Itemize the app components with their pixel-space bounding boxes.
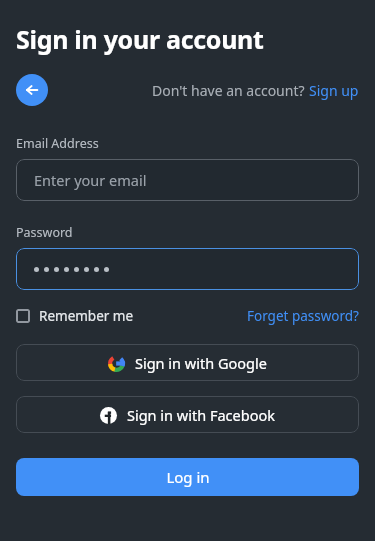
staticText: Remember me bbox=[39, 307, 134, 325]
button[interactable]: Enter your email bbox=[16, 159, 359, 201]
staticText: Log in bbox=[166, 467, 210, 487]
button[interactable]: Forget password? bbox=[247, 307, 359, 325]
button[interactable]: Remember me bbox=[16, 307, 134, 325]
button[interactable]: Sign up bbox=[309, 81, 359, 100]
staticText: Password bbox=[16, 224, 73, 241]
button[interactable] bbox=[16, 248, 359, 290]
staticText: Email Address bbox=[16, 135, 99, 152]
staticText: Sign in with Facebook bbox=[127, 405, 275, 425]
staticText: Forget password? bbox=[247, 307, 359, 325]
staticText: Sign in your account bbox=[16, 22, 264, 56]
staticText: Sign up bbox=[309, 81, 359, 100]
staticText: Enter your email bbox=[34, 170, 147, 190]
button[interactable]: Back bbox=[16, 74, 48, 106]
staticText: Sign in with Google bbox=[135, 353, 267, 373]
button[interactable]: Sign in with Facebook bbox=[16, 396, 359, 433]
button[interactable]: Sign in with Google bbox=[16, 344, 359, 381]
staticText: Don't have an account? bbox=[152, 81, 309, 100]
button[interactable]: Log in bbox=[16, 458, 359, 496]
